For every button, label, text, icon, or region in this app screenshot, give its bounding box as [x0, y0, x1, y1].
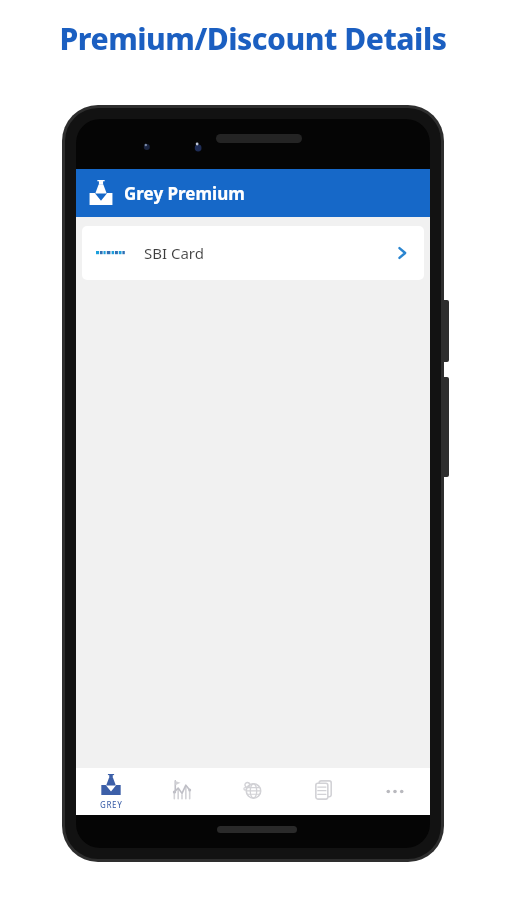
button[interactable]: Reports — [288, 768, 359, 815]
staticText: Grey Premium — [124, 182, 245, 205]
button[interactable]: Analytics — [146, 768, 217, 815]
button[interactable]: GREY — [76, 768, 146, 815]
other: Grey logo — [88, 180, 114, 206]
staticText: Premium/Discount Details — [0, 18, 506, 59]
button[interactable]: Global — [217, 768, 288, 815]
staticText: GREY — [100, 799, 123, 810]
button[interactable]: More — [359, 768, 430, 815]
button[interactable]: SBI Card — [82, 226, 424, 280]
staticText: SBI Card — [144, 243, 204, 263]
